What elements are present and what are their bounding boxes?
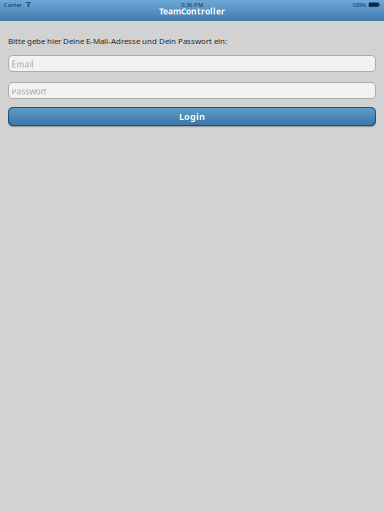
staticText: Bitte gebe hier Deine E-Mail-Adresse und…: [8, 36, 227, 46]
staticText: Email: [12, 59, 34, 70]
button[interactable]: Email: [8, 55, 376, 72]
staticText: TeamController: [159, 5, 225, 17]
staticText: Login: [179, 110, 205, 123]
staticText: 5:36 PM: [181, 1, 203, 9]
staticText: Carrier: [4, 1, 22, 9]
button[interactable]: Passwort: [8, 82, 376, 99]
staticText: Passwort: [12, 86, 47, 97]
button[interactable]: Login: [8, 107, 376, 126]
staticText: 100%: [352, 1, 366, 9]
